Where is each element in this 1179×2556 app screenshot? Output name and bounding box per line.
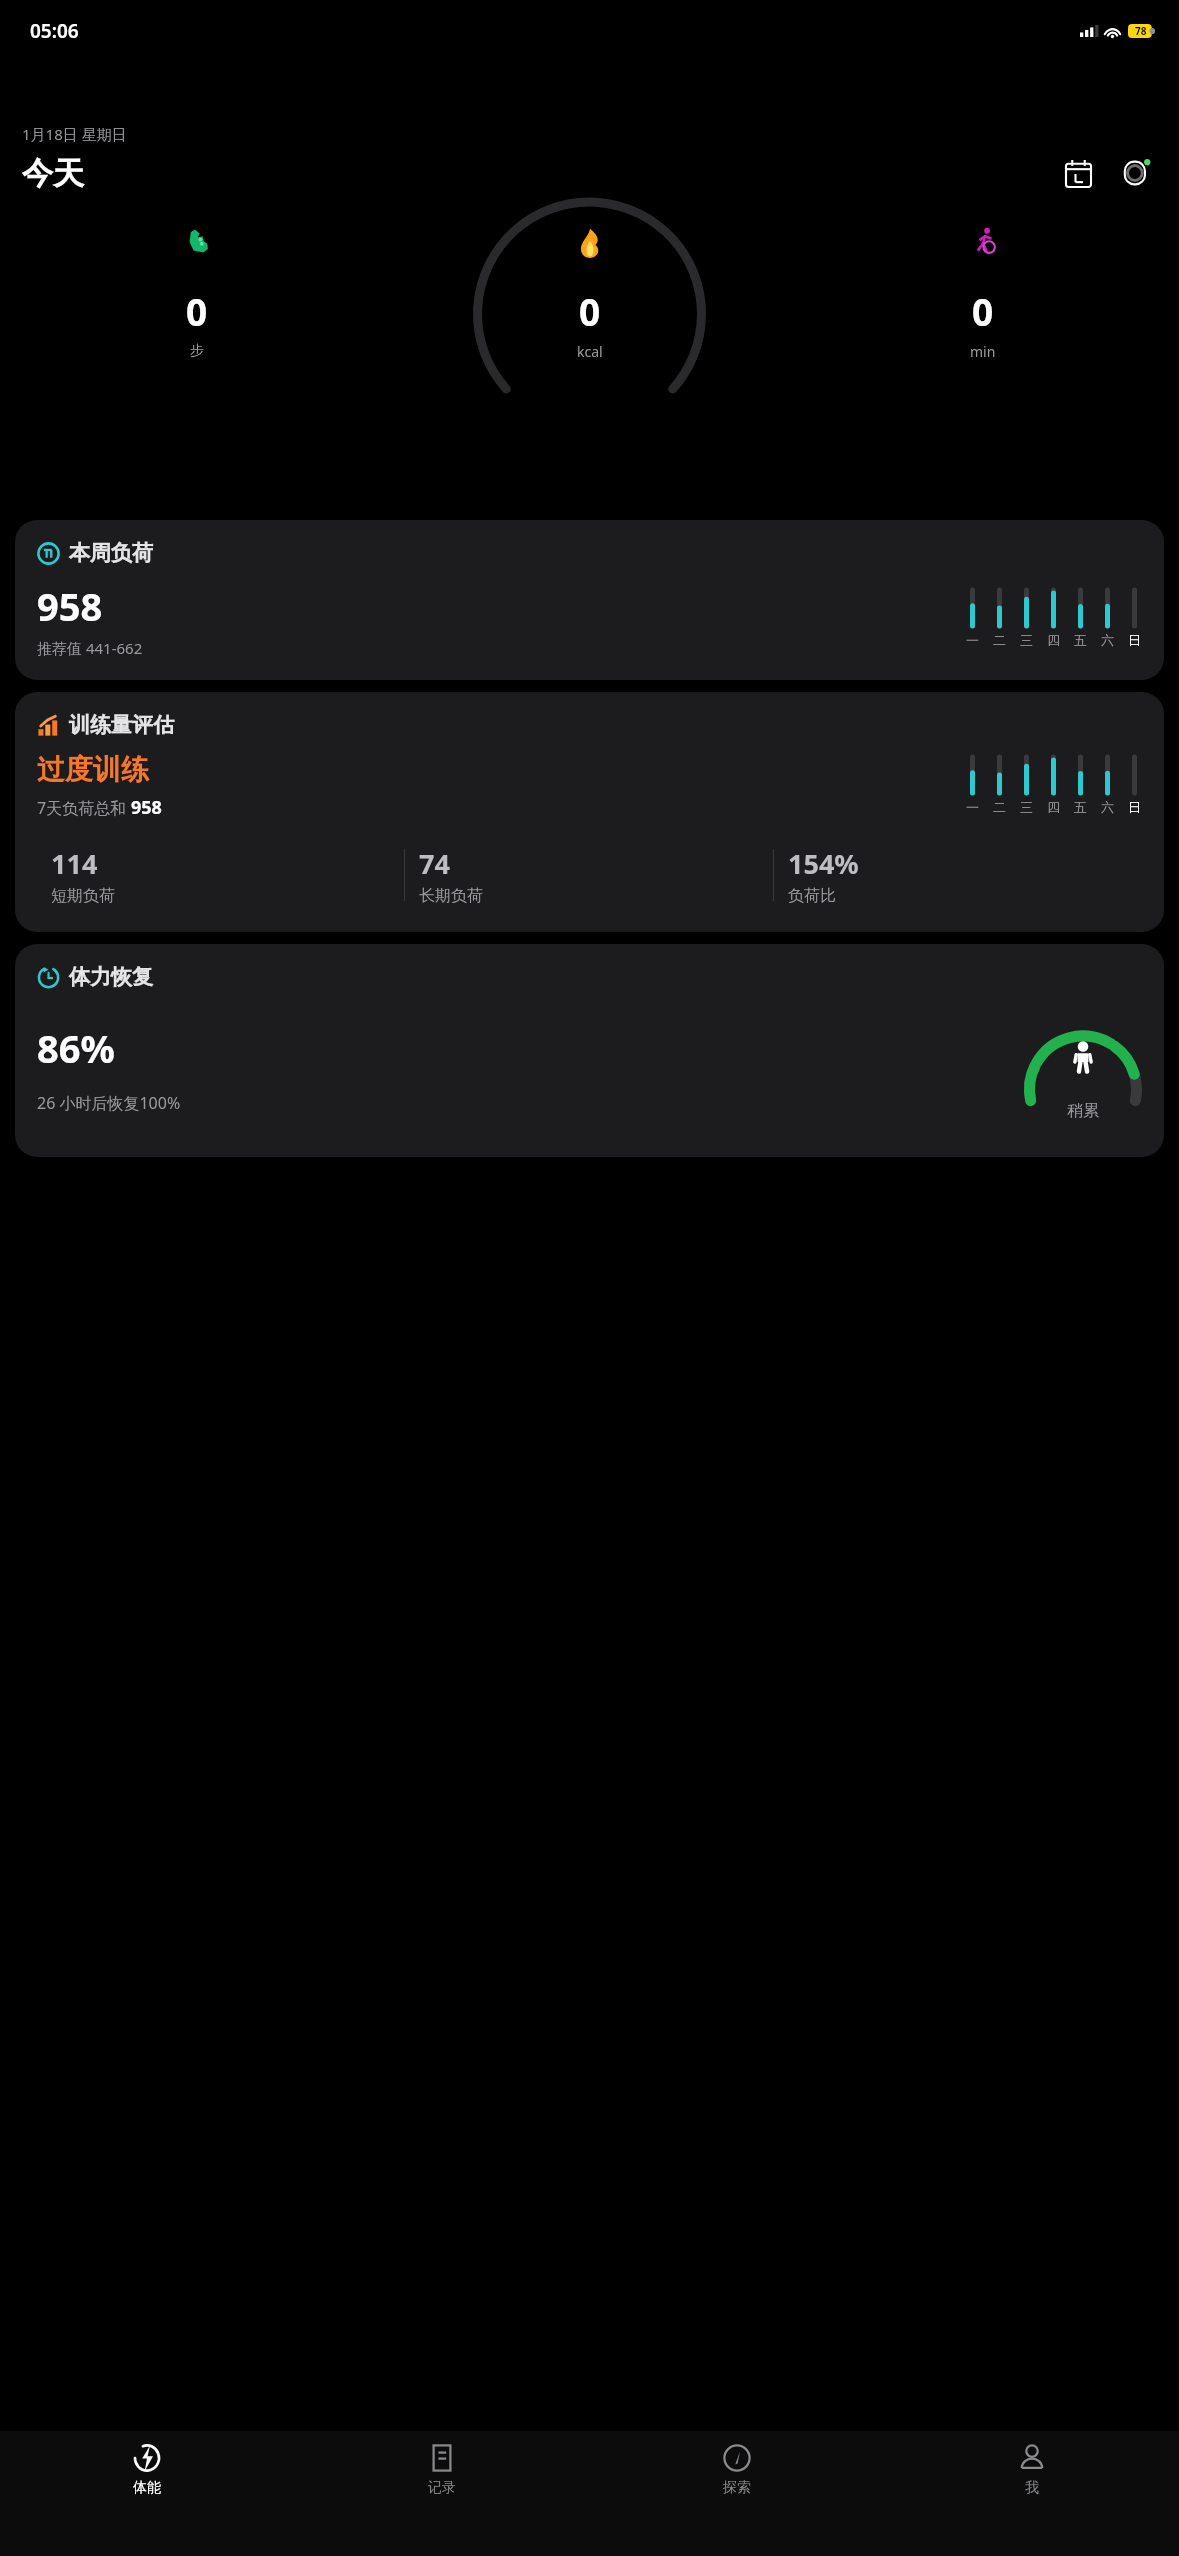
staticText: 今天	[22, 154, 84, 193]
button[interactable]: 我	[884, 2431, 1179, 2556]
button[interactable]: 体力恢复	[15, 944, 1164, 1157]
staticText: 六	[1101, 799, 1114, 815]
staticText: 过度训练	[37, 752, 149, 787]
staticText: 六	[1101, 632, 1114, 648]
staticText: 长期负荷	[419, 886, 483, 906]
staticText: 推荐值 441-662	[37, 638, 143, 658]
button[interactable]: Calendar	[1055, 150, 1101, 196]
staticText: kcal	[577, 342, 603, 361]
staticText: 我	[1025, 2479, 1039, 2497]
staticText: 稍累	[1067, 1101, 1099, 1121]
button[interactable]: 记录	[294, 2431, 589, 2556]
staticText: 记录	[428, 2479, 456, 2497]
staticText: 05:06	[30, 18, 79, 44]
staticText: 三	[1020, 632, 1033, 648]
staticText: 训练量评估	[69, 712, 174, 738]
staticText: 四	[1047, 799, 1060, 815]
button[interactable]: 体能	[0, 2431, 294, 2556]
staticText: 958	[131, 795, 162, 820]
staticText: 0	[186, 286, 208, 336]
staticText: 74	[419, 845, 450, 882]
staticText: 三	[1020, 799, 1033, 815]
staticText: 五	[1074, 799, 1087, 815]
staticText: 短期负荷	[51, 886, 115, 906]
button[interactable]: 0	[393, 226, 786, 361]
staticText: 1月18日 星期日	[22, 124, 127, 144]
staticText: min	[970, 342, 996, 361]
staticText: 本周负荷	[69, 540, 153, 566]
button[interactable]: 探索	[589, 2431, 884, 2556]
staticText: 7天负荷总和	[37, 797, 131, 819]
staticText: 一	[966, 632, 979, 648]
staticText: 0	[972, 286, 994, 336]
staticText: 负荷比	[788, 886, 836, 906]
staticText: 四	[1047, 632, 1060, 648]
button[interactable]: 本周负荷	[15, 520, 1164, 680]
staticText: 日	[1128, 632, 1141, 648]
staticText: 二	[993, 632, 1006, 648]
staticText: 二	[993, 799, 1006, 815]
staticText: 步	[190, 342, 204, 360]
staticText: 154%	[788, 845, 859, 882]
staticText: 0	[579, 286, 601, 336]
staticText: 958	[37, 580, 103, 632]
button[interactable]: Watch	[1113, 150, 1159, 196]
staticText: 26 小时后恢复100%	[37, 1092, 181, 1114]
staticText: 日	[1128, 799, 1141, 815]
staticText: 五	[1074, 632, 1087, 648]
staticText: 探索	[723, 2479, 751, 2497]
staticText: 一	[966, 799, 979, 815]
staticText: 86%	[37, 1022, 115, 1074]
button[interactable]: 训练量评估	[15, 692, 1164, 932]
button[interactable]: 0	[786, 226, 1179, 361]
staticText: 体力恢复	[69, 964, 153, 990]
staticText: 78	[1135, 24, 1147, 38]
staticText: 体能	[133, 2479, 161, 2497]
staticText: 114	[51, 845, 98, 882]
button[interactable]: 0	[0, 226, 393, 360]
